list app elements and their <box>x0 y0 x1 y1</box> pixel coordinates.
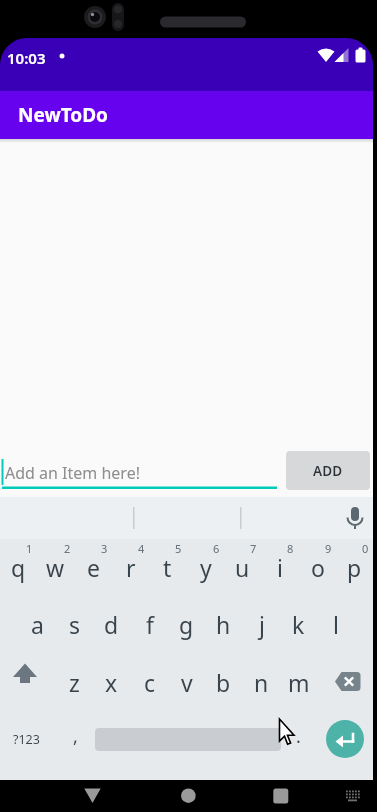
button[interactable] <box>6 657 50 705</box>
button[interactable]: 8 <box>282 541 298 555</box>
staticText: k <box>292 609 305 640</box>
staticText: 6 <box>213 541 220 555</box>
button[interactable]: o <box>299 543 336 591</box>
button[interactable]: 4 <box>133 541 149 555</box>
button[interactable]: p <box>336 543 373 591</box>
staticText: 1 <box>26 541 33 555</box>
staticText: q <box>11 552 26 583</box>
staticText: 2 <box>64 541 71 555</box>
staticText: o <box>311 552 325 583</box>
button[interactable]: e <box>75 543 112 591</box>
button[interactable]: s <box>56 600 93 648</box>
staticText: a <box>31 609 44 640</box>
staticText: 5 <box>175 541 182 555</box>
staticText: t <box>163 552 172 583</box>
staticText: r <box>126 552 136 583</box>
button[interactable] <box>168 780 208 812</box>
button[interactable]: w <box>37 543 74 591</box>
button[interactable]: a <box>19 600 56 648</box>
button[interactable]: c <box>131 658 168 706</box>
button[interactable]: 0 <box>357 541 373 555</box>
staticText: u <box>235 552 250 583</box>
staticText: 0 <box>362 541 369 555</box>
button[interactable]: r <box>112 543 149 591</box>
button[interactable] <box>336 780 370 812</box>
staticText: g <box>179 609 194 640</box>
button[interactable]: m <box>280 658 317 706</box>
button[interactable]: j <box>243 600 280 648</box>
staticText: 3 <box>101 541 108 555</box>
staticText: p <box>347 552 362 583</box>
button[interactable]: l <box>317 600 354 648</box>
button[interactable]: , <box>57 712 94 760</box>
staticText: v <box>181 667 193 698</box>
button[interactable]: d <box>93 600 130 648</box>
button[interactable] <box>74 780 114 812</box>
button[interactable]: ADD <box>286 451 370 490</box>
button[interactable]: f <box>131 600 168 648</box>
button[interactable]: 3 <box>96 541 112 555</box>
button[interactable]: u <box>224 543 261 591</box>
staticText: f <box>146 609 154 640</box>
button[interactable]: ?123 <box>2 715 50 763</box>
button[interactable]: y <box>187 543 224 591</box>
staticText: x <box>105 667 118 698</box>
button[interactable]: g <box>168 600 205 648</box>
button[interactable]: q <box>0 543 37 591</box>
button[interactable]: . <box>280 712 317 760</box>
button[interactable]: n <box>243 658 280 706</box>
staticText: 9 <box>325 541 332 555</box>
staticText: NewToDo <box>18 102 108 128</box>
staticText: . <box>296 724 301 749</box>
staticText: l <box>333 609 339 640</box>
staticText: w <box>46 552 65 583</box>
staticText: y <box>200 552 212 583</box>
button[interactable]: z <box>56 658 93 706</box>
button[interactable]: 6 <box>208 541 224 555</box>
staticText: 7 <box>250 541 257 555</box>
button[interactable]: t <box>149 543 186 591</box>
button[interactable]: 5 <box>170 541 186 555</box>
button[interactable]: 9 <box>320 541 336 555</box>
staticText: e <box>87 552 100 583</box>
staticText: i <box>277 552 283 583</box>
staticText: h <box>216 609 231 640</box>
staticText: c <box>144 667 156 698</box>
staticText: , <box>73 724 78 749</box>
button[interactable] <box>326 720 364 758</box>
staticText: Add an Item here! <box>5 462 140 484</box>
staticText: j <box>259 609 265 640</box>
button[interactable]: Add an Item here! <box>0 451 280 495</box>
button[interactable] <box>262 780 302 812</box>
staticText: b <box>216 667 231 698</box>
button[interactable] <box>337 501 373 535</box>
staticText: z <box>69 667 80 698</box>
staticText: n <box>254 667 269 698</box>
button[interactable]: i <box>261 543 298 591</box>
staticText: d <box>104 609 119 640</box>
button[interactable]: h <box>205 600 242 648</box>
button[interactable]: b <box>205 658 242 706</box>
button[interactable]: x <box>93 658 130 706</box>
button[interactable]: 1 <box>21 541 37 555</box>
button[interactable]: k <box>280 600 317 648</box>
button[interactable]: v <box>168 658 205 706</box>
staticText: 4 <box>138 541 145 555</box>
staticText: s <box>69 609 81 640</box>
button[interactable] <box>326 657 370 705</box>
button[interactable]: 7 <box>245 541 261 555</box>
staticText: m <box>288 667 310 698</box>
staticText: 10:03 <box>7 48 46 68</box>
staticText: ?123 <box>13 731 40 748</box>
staticText: 8 <box>287 541 294 555</box>
button[interactable] <box>95 728 281 751</box>
staticText: ADD <box>313 462 343 480</box>
button[interactable]: 2 <box>59 541 75 555</box>
